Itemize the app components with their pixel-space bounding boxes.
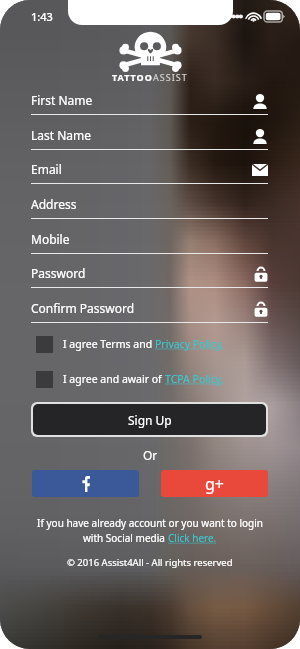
staticText: Or (143, 447, 158, 463)
staticText: TATTOO (112, 71, 153, 83)
staticText: Privacy Policy. (155, 337, 224, 351)
button[interactable]: First Name (31, 88, 268, 114)
button[interactable]: Last Name (31, 123, 268, 149)
button[interactable]: Sign up with Facebook (32, 470, 139, 497)
button[interactable]: Sign Up (33, 404, 266, 435)
button[interactable]: Address (31, 192, 268, 218)
button[interactable]: Click here. (168, 531, 217, 545)
staticText: with Social media (83, 531, 168, 545)
staticText: Last Name (31, 127, 92, 143)
staticText: © 2016 Assist4All - All rights reserved (67, 556, 233, 569)
staticText: Email (31, 161, 62, 177)
button[interactable]: Sign up with Google Plus (161, 470, 268, 497)
button[interactable]: Password (31, 261, 268, 287)
staticText: 1:43 (31, 9, 53, 24)
staticText: I agree Terms and (63, 337, 155, 351)
staticText: If you have already account or you want … (37, 516, 263, 530)
staticText: Sign Up (128, 412, 172, 428)
staticText: Address (31, 196, 77, 212)
button[interactable]: Confirm Password (31, 296, 268, 322)
button[interactable]: I agree and awair of (36, 369, 224, 389)
staticText: Password (31, 265, 86, 281)
button[interactable]: I agree Terms and (36, 334, 224, 354)
button[interactable]: Mobile (31, 227, 268, 253)
staticText: Mobile (31, 231, 70, 247)
button[interactable]: Email (31, 157, 268, 183)
staticText: g+ (205, 473, 224, 495)
staticText: Confirm Password (31, 300, 135, 316)
staticText: First Name (31, 92, 93, 108)
staticText: ASSIST (153, 71, 188, 83)
staticText: TCPA Policy. (165, 372, 224, 386)
staticText: I agree and awair of (63, 372, 165, 386)
